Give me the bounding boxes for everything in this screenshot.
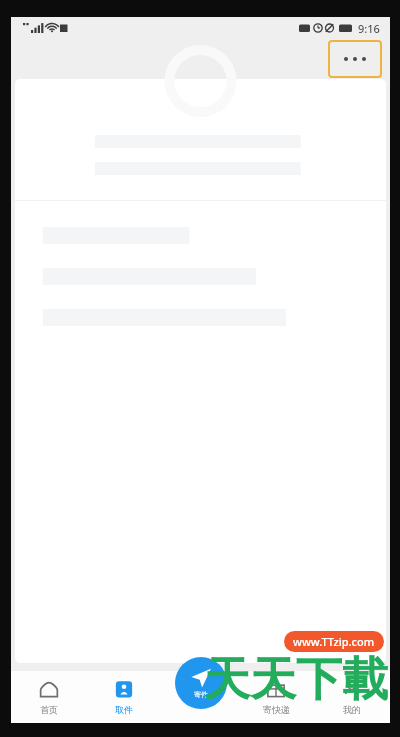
button[interactable]: 寄快递	[238, 671, 314, 723]
staticText: www.TTzip.com	[293, 634, 375, 649]
staticText: 寄快递	[263, 704, 290, 715]
staticText: 我的	[343, 704, 361, 715]
button[interactable]: 我的	[314, 671, 390, 723]
button[interactable]: 首页	[11, 671, 86, 723]
staticText: 寄件	[194, 690, 208, 699]
button[interactable]: 寄件	[175, 657, 227, 709]
staticText: 天天下載	[204, 651, 388, 709]
button[interactable]: 取件	[86, 671, 162, 723]
button[interactable]: More options	[328, 40, 382, 78]
staticText: 取件	[115, 704, 133, 715]
staticText: 首页	[40, 704, 58, 715]
staticText: 9:16	[358, 21, 380, 36]
